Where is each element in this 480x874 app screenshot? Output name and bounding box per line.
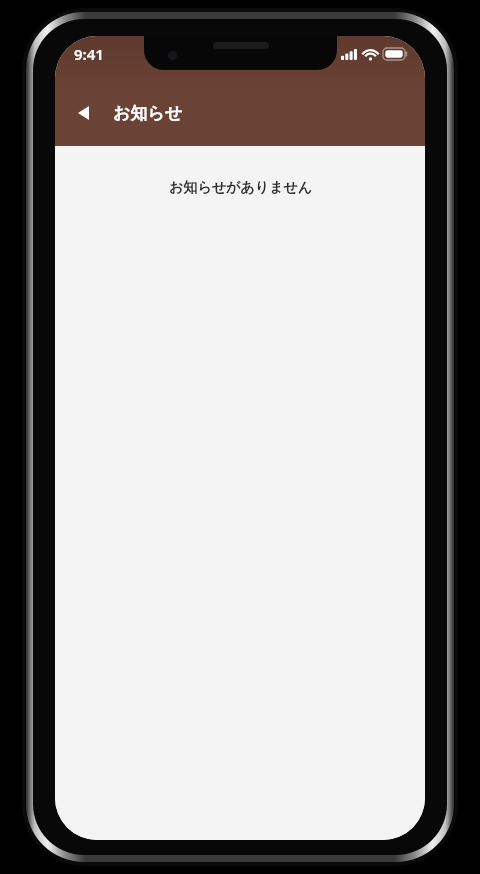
staticText: お知らせ <box>113 103 183 124</box>
staticText: 9:41 <box>74 44 104 64</box>
staticText: お知らせがありません <box>169 179 312 197</box>
button[interactable]: 戻る <box>61 91 105 135</box>
